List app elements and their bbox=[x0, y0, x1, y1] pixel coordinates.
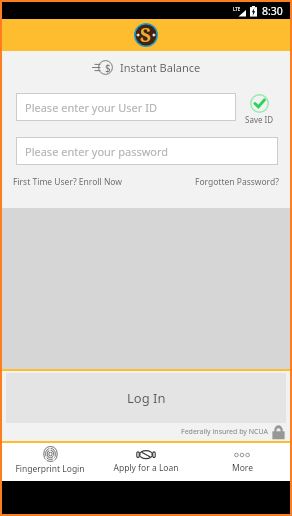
staticText: More bbox=[232, 462, 253, 474]
staticText: 8:30 bbox=[262, 4, 283, 18]
button[interactable]: Save ID bbox=[245, 94, 274, 125]
button[interactable]: Log In bbox=[6, 373, 286, 423]
button[interactable]: Apply for a Loan bbox=[98, 443, 194, 481]
staticText: Please enter your User ID bbox=[25, 100, 157, 115]
staticText: LTE bbox=[233, 6, 241, 12]
staticText: S bbox=[140, 22, 152, 46]
staticText: Save ID bbox=[245, 114, 274, 125]
button[interactable]: First Time User? Enroll Now bbox=[13, 176, 122, 188]
staticText: Instant Balance bbox=[120, 60, 201, 75]
staticText: Please enter your password bbox=[25, 144, 169, 159]
button[interactable]: Please enter your password bbox=[16, 137, 278, 165]
staticText: Apply for a Loan bbox=[113, 462, 179, 474]
button[interactable]: Please enter your User ID bbox=[16, 93, 236, 121]
staticText: $ bbox=[105, 61, 111, 75]
button[interactable]: Fingerprint Login bbox=[2, 443, 98, 481]
button[interactable]: More bbox=[194, 443, 290, 481]
button[interactable]: Forgotten Password? bbox=[195, 176, 279, 188]
button[interactable]: $ bbox=[2, 60, 290, 75]
staticText: Fingerprint Login bbox=[15, 463, 85, 475]
staticText: Federally insured by NCUA bbox=[181, 427, 268, 437]
staticText: Log In bbox=[127, 389, 166, 407]
